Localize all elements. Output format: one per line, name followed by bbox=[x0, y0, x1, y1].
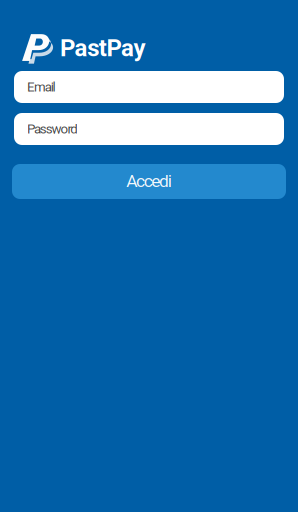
button[interactable]: Email bbox=[0, 71, 298, 103]
staticText: Accedi bbox=[126, 171, 172, 191]
staticText: Password bbox=[27, 121, 78, 137]
staticText: PastPay bbox=[60, 34, 146, 62]
staticText: Email bbox=[27, 79, 56, 95]
button[interactable]: Accedi bbox=[0, 164, 298, 199]
button[interactable]: Password bbox=[0, 113, 298, 145]
